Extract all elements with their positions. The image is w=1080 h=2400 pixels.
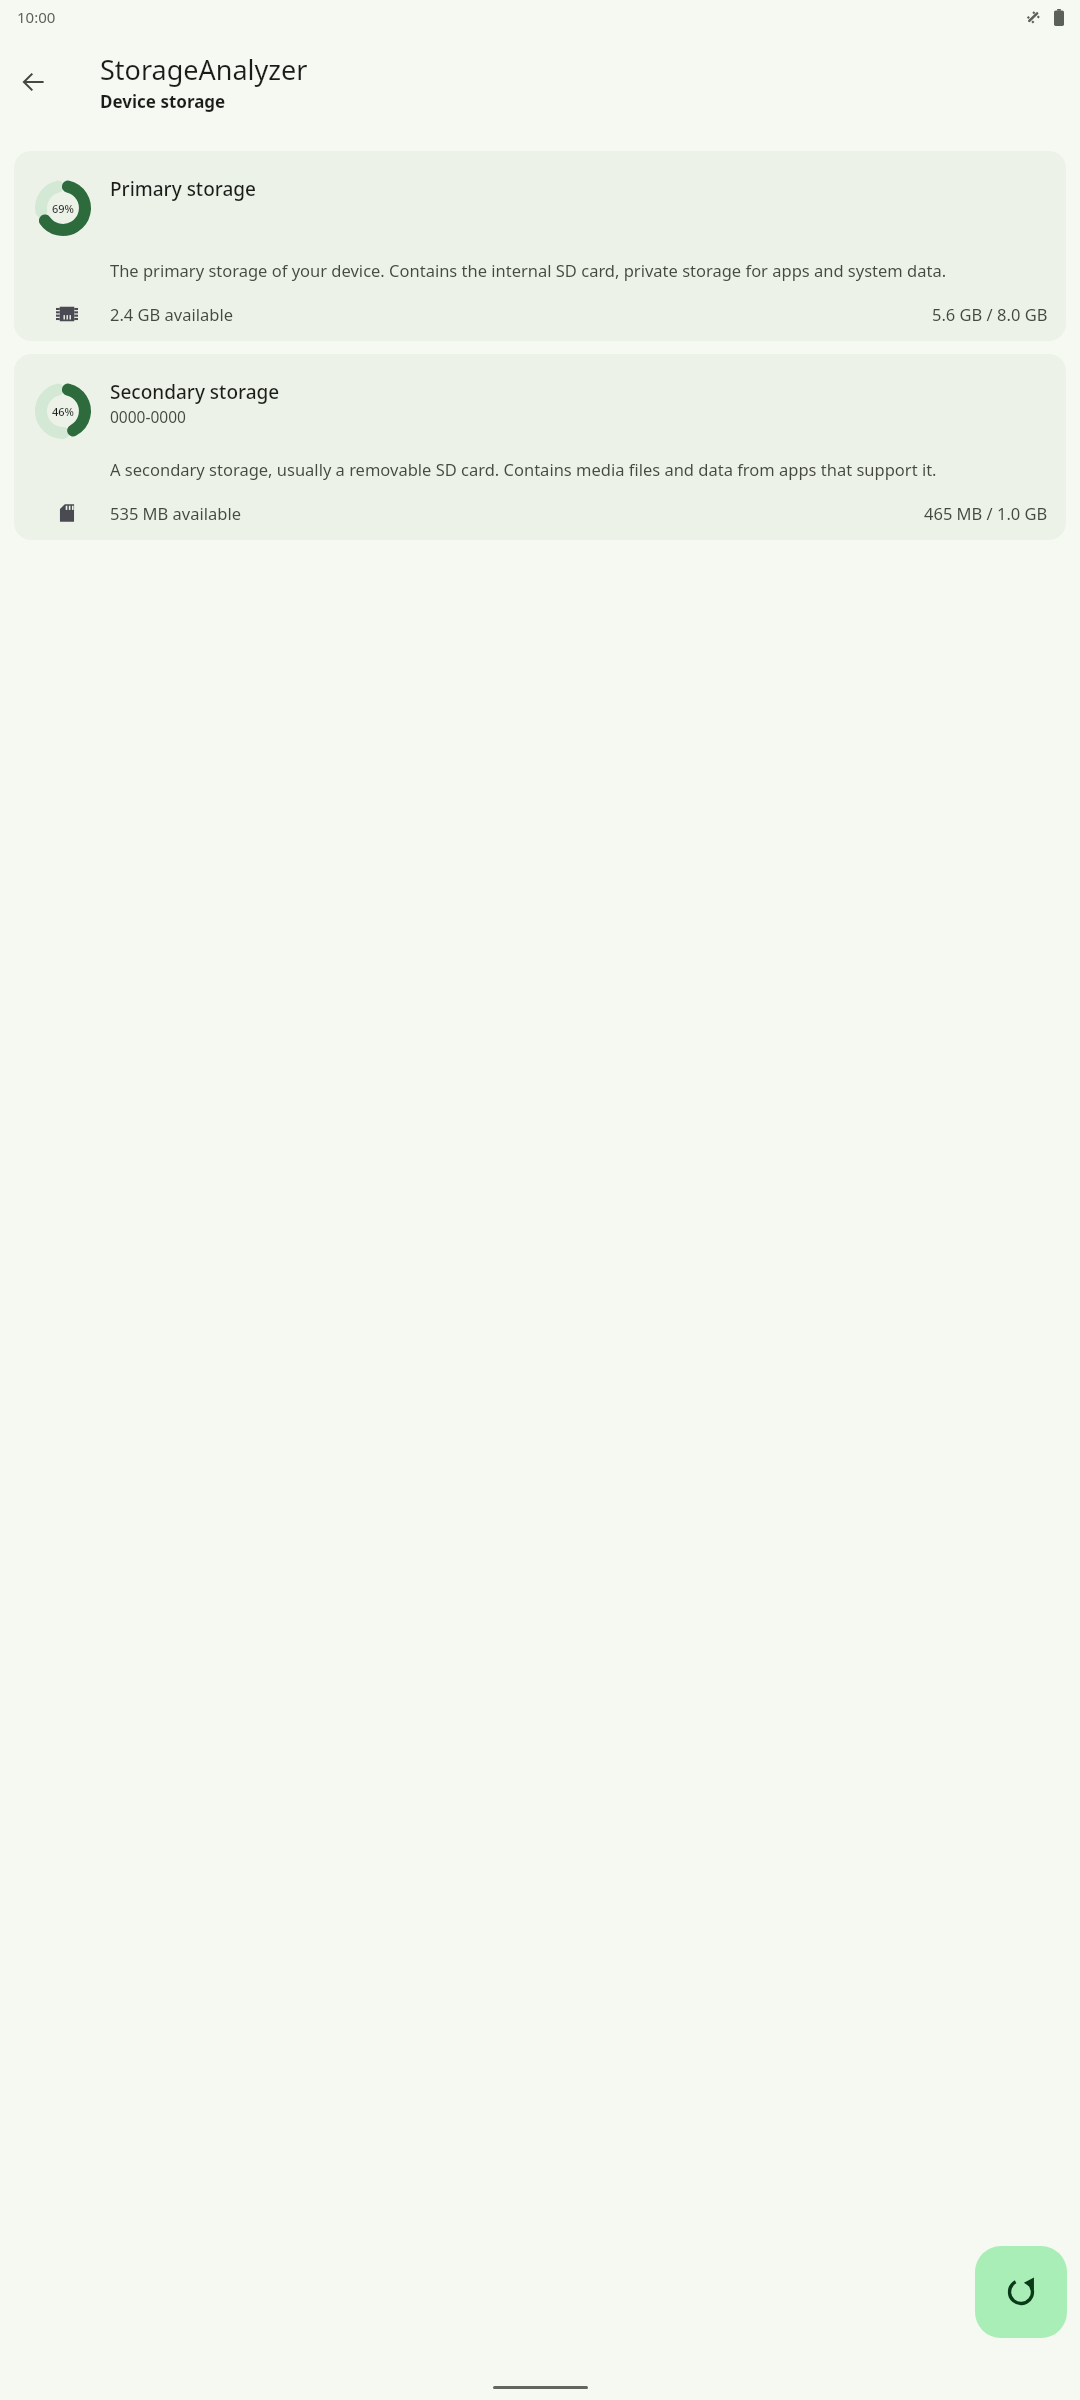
staticText: Device storage [100,90,226,113]
staticText: 2.4 GB available [110,303,233,325]
staticText: 5.6 GB / 8.0 GB [932,303,1048,325]
staticText: StorageAnalyzer [100,51,308,88]
staticText: 46% [52,404,74,419]
staticText: 465 MB / 1.0 GB [924,502,1048,524]
button[interactable]: Back [10,58,58,106]
staticText: 0000-0000 [110,406,186,427]
staticText: A secondary storage, usually a removable… [110,458,937,480]
staticText: Secondary storage [110,379,280,405]
button[interactable]: Refresh [975,2246,1067,2338]
staticText: The primary storage of your device. Cont… [110,259,947,281]
button[interactable]: 46% [14,354,1066,540]
staticText: Primary storage [110,176,256,202]
staticText: 535 MB available [110,502,241,524]
staticText: 10:00 [17,7,56,27]
staticText: 69% [52,201,74,216]
button[interactable]: 69% [14,151,1066,341]
